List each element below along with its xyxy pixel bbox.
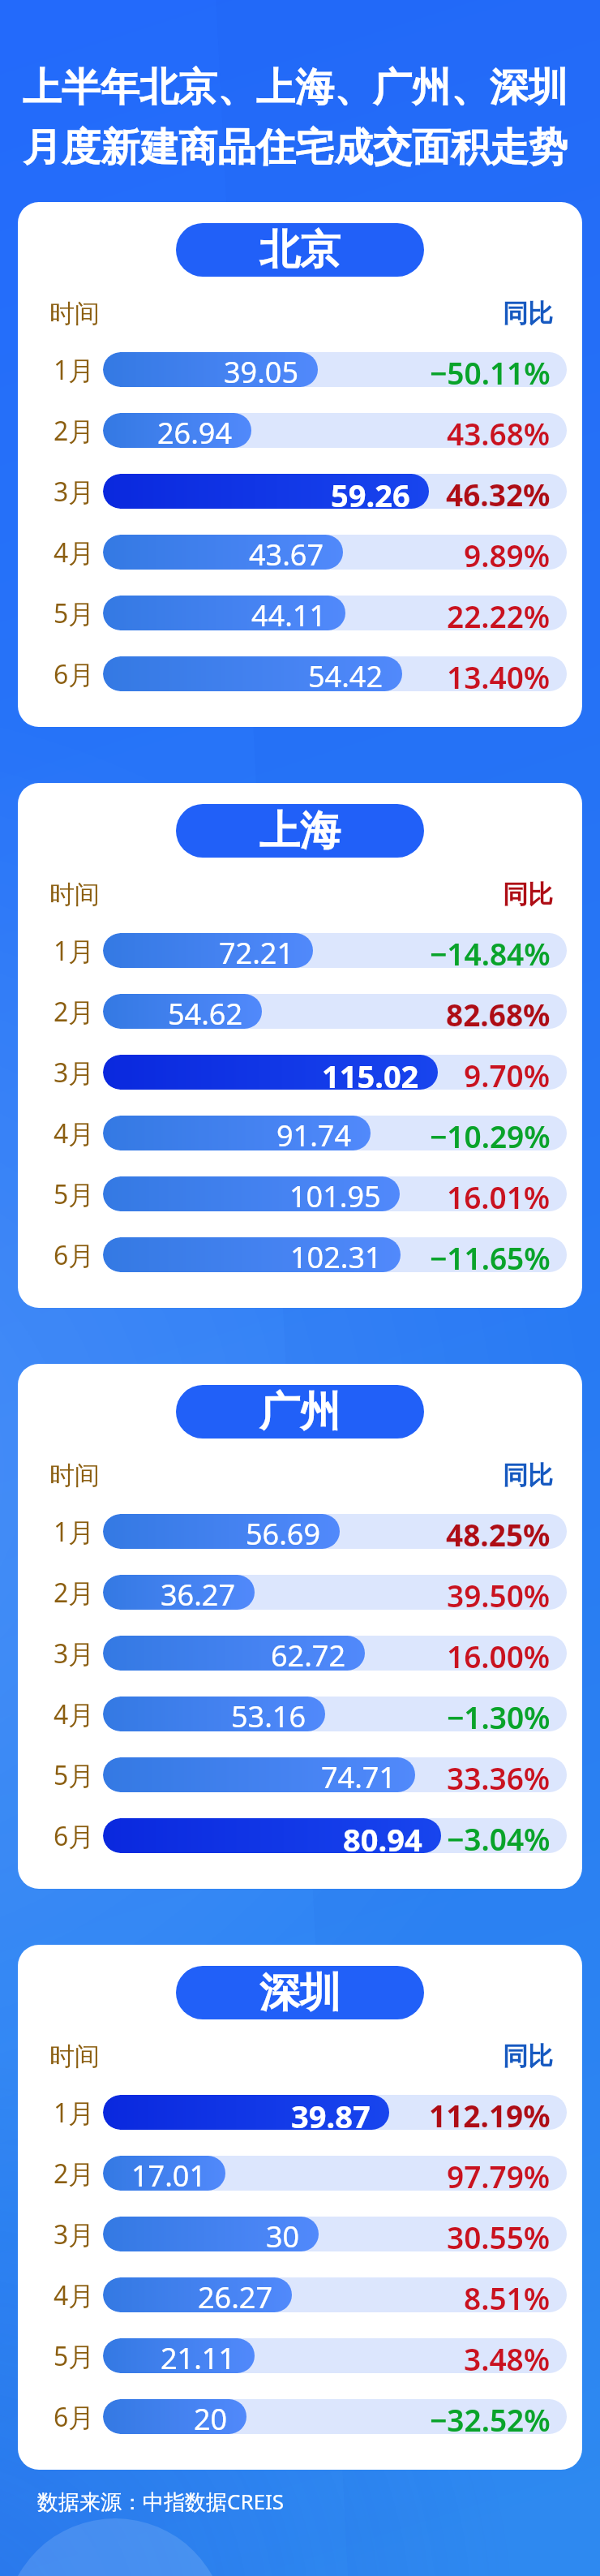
button[interactable]: 上海 (18, 783, 582, 1308)
staticText: 16.01% (447, 1176, 551, 1211)
staticText: 2月 (54, 413, 95, 448)
staticText: 43.67 (249, 535, 324, 570)
staticText: −3.04% (447, 1818, 551, 1853)
staticText: 115.02 (322, 1055, 419, 1090)
staticText: 9.89% (464, 535, 551, 570)
staticText: 13.40% (447, 656, 551, 691)
staticText: 22.22% (447, 596, 551, 630)
staticText: 9.70% (464, 1055, 551, 1090)
staticText: 17.01 (131, 2156, 207, 2191)
staticText: 3月 (54, 1636, 95, 1671)
staticText: 102.31 (290, 1237, 382, 1272)
staticText: 4月 (54, 535, 95, 570)
staticText: 数据来源：中指数据CREIS (37, 2487, 285, 2516)
staticText: 6月 (54, 656, 95, 691)
staticText: 101.95 (289, 1176, 381, 1211)
staticText: 54.42 (308, 656, 384, 691)
button[interactable]: 上海 (176, 804, 424, 858)
staticText: 26.27 (198, 2277, 273, 2312)
staticText: 72.21 (219, 933, 294, 968)
staticText: 82.68% (446, 994, 551, 1029)
staticText: 80.94 (343, 1818, 422, 1853)
button[interactable]: 深圳 (176, 1966, 424, 2019)
staticText: 112.19% (429, 2095, 551, 2130)
staticText: 21.11 (161, 2338, 236, 2373)
staticText: 4月 (54, 1697, 95, 1731)
staticText: 5月 (54, 1176, 95, 1211)
staticText: 5月 (54, 596, 95, 630)
staticText: 深圳 (259, 1967, 341, 2019)
staticText: 33.36% (447, 1757, 551, 1792)
staticText: 1月 (54, 2095, 95, 2130)
staticText: 62.72 (271, 1636, 346, 1671)
staticText: −14.84% (430, 933, 551, 968)
staticText: 54.62 (168, 994, 243, 1029)
staticText: 北京 (259, 225, 341, 276)
staticText: −11.65% (430, 1237, 551, 1272)
staticText: 时间 (49, 2041, 100, 2070)
staticText: 30.55% (447, 2217, 551, 2251)
button[interactable]: 北京 (176, 223, 424, 277)
staticText: 39.87 (291, 2095, 371, 2130)
staticText: 3月 (54, 1055, 95, 1090)
staticText: −50.11% (430, 352, 551, 387)
staticText: −1.30% (447, 1697, 551, 1731)
button[interactable]: 广州 (18, 1364, 582, 1889)
staticText: 时间 (49, 1460, 100, 1489)
staticText: 4月 (54, 2277, 95, 2312)
staticText: 上海 (259, 806, 341, 857)
staticText: 1月 (54, 933, 95, 968)
button[interactable]: 广州 (176, 1385, 424, 1439)
staticText: 48.25% (446, 1514, 551, 1549)
staticText: 74.71 (321, 1757, 396, 1792)
button[interactable]: 深圳 (18, 1945, 582, 2470)
staticText: 6月 (54, 1237, 95, 1272)
staticText: 36.27 (161, 1575, 236, 1610)
staticText: 4月 (54, 1116, 95, 1150)
staticText: 2月 (54, 2156, 95, 2191)
staticText: 同比 (503, 879, 553, 908)
staticText: 39.05 (224, 352, 299, 387)
staticText: 时间 (49, 879, 100, 908)
staticText: 97.79% (447, 2156, 551, 2191)
staticText: 46.32% (446, 474, 551, 509)
staticText: 6月 (54, 1818, 95, 1853)
staticText: 1月 (54, 352, 95, 387)
staticText: 同比 (503, 1460, 553, 1489)
staticText: 30 (266, 2217, 300, 2251)
staticText: −32.52% (430, 2399, 551, 2434)
staticText: 44.11 (251, 596, 327, 630)
staticText: 5月 (54, 2338, 95, 2373)
staticText: 39.50% (447, 1575, 551, 1610)
staticText: 广州 (259, 1387, 341, 1438)
staticText: 时间 (49, 298, 100, 327)
staticText: 同比 (503, 298, 553, 327)
button[interactable]: 北京 (18, 202, 582, 727)
staticText: 20 (194, 2399, 228, 2434)
staticText: −10.29% (430, 1116, 551, 1150)
staticText: 8.51% (464, 2277, 551, 2312)
staticText: 月度新建商品住宅成交面积走势 (23, 123, 568, 172)
staticText: 59.26 (331, 474, 410, 509)
staticText: 同比 (503, 2041, 553, 2070)
staticText: 2月 (54, 994, 95, 1029)
staticText: 16.00% (447, 1636, 551, 1671)
staticText: 2月 (54, 1575, 95, 1610)
staticText: 3月 (54, 474, 95, 509)
staticText: 26.94 (157, 413, 233, 448)
staticText: 上半年北京、上海、广州、深圳 (23, 63, 568, 112)
staticText: 6月 (54, 2399, 95, 2434)
staticText: 53.16 (231, 1697, 306, 1731)
staticText: 91.74 (276, 1116, 352, 1150)
staticText: 56.69 (246, 1514, 321, 1549)
staticText: 5月 (54, 1757, 95, 1792)
staticText: 3.48% (464, 2338, 551, 2373)
staticText: 1月 (54, 1514, 95, 1549)
staticText: 3月 (54, 2217, 95, 2251)
staticText: 43.68% (447, 413, 551, 448)
